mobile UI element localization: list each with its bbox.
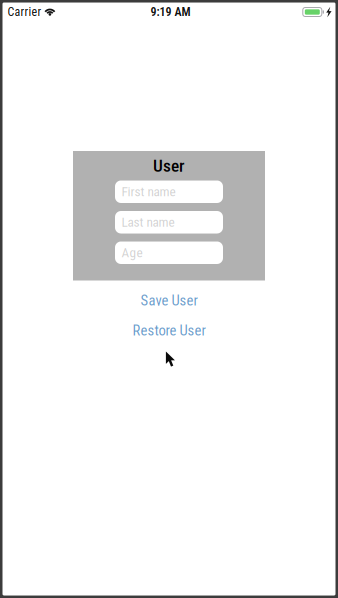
staticText: Save User <box>140 292 197 309</box>
staticText: Last name <box>121 214 174 230</box>
staticText: Restore User <box>132 322 205 339</box>
staticText: Carrier <box>7 5 41 19</box>
staticText: 9:19 AM <box>150 5 190 19</box>
staticText: First name <box>121 184 175 199</box>
button[interactable]: Save User <box>124 280 214 315</box>
staticText: Age <box>121 245 142 260</box>
button[interactable]: Restore User <box>119 315 219 345</box>
staticText: User <box>153 156 185 176</box>
